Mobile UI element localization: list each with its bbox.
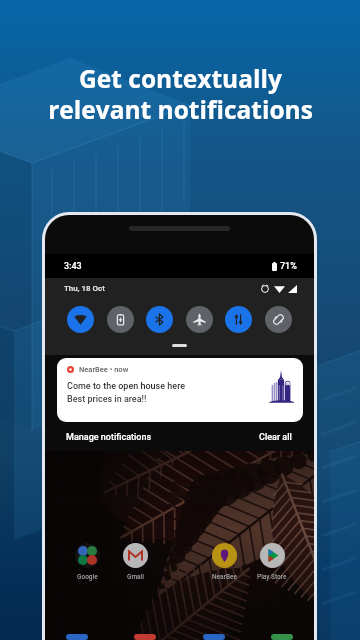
staticText: NearBee • now	[79, 365, 129, 374]
staticText: Play Store	[257, 573, 287, 581]
button[interactable]: Dock app	[203, 634, 225, 640]
button[interactable]: Gmail	[111, 543, 159, 581]
staticText: Clear all	[259, 432, 292, 443]
staticText: Google	[77, 573, 98, 581]
button[interactable]: Bluetooth	[146, 306, 173, 333]
button[interactable]: Mobile data	[225, 306, 252, 333]
button[interactable]: Airplane mode	[186, 306, 213, 333]
staticText: NearBee	[212, 573, 237, 581]
staticText: Get contextually relevant notifications	[48, 62, 313, 126]
button[interactable]: Auto rotate	[265, 306, 292, 333]
button[interactable]: Play Store	[248, 543, 296, 581]
staticText: Thu, 18 Oct	[64, 284, 105, 293]
staticText: Best prices in area!!	[67, 394, 147, 405]
staticText: Gmail	[127, 573, 144, 581]
button[interactable]: Dock app	[134, 634, 156, 640]
button[interactable]: Google	[63, 543, 111, 581]
staticText: Manage notifications	[66, 432, 152, 443]
button[interactable]: NearBee	[200, 543, 248, 581]
staticText: 71%	[280, 261, 297, 272]
button[interactable]: Dock app	[271, 634, 293, 640]
button[interactable]: Manage notifications	[66, 432, 152, 443]
button[interactable]: Dock app	[66, 634, 88, 640]
button[interactable]: Battery saver	[107, 306, 134, 333]
button[interactable]: NearBee • now	[57, 358, 303, 422]
staticText: 3:43	[64, 261, 82, 272]
button[interactable]: Clear all	[259, 432, 292, 443]
button[interactable]: Wi-Fi	[67, 306, 94, 333]
staticText: Come to the open house here	[67, 381, 186, 392]
